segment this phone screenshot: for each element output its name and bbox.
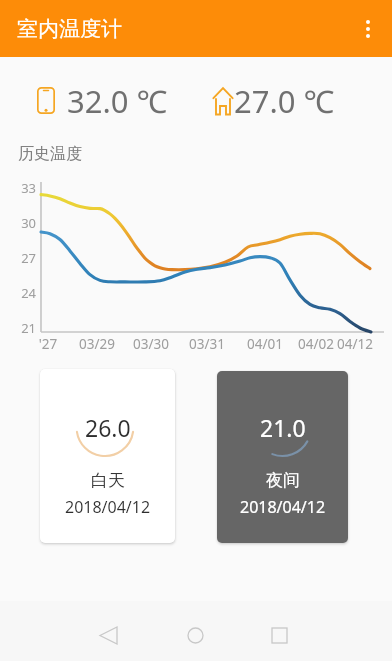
staticText: 04/02 (291, 335, 341, 353)
staticText: 21.0 (260, 412, 306, 443)
staticText: 白天 (91, 470, 125, 491)
staticText: 03/31 (182, 335, 232, 353)
staticText: 04/01 (240, 335, 290, 353)
staticText: 27.0 ℃ (234, 80, 335, 122)
button[interactable]: Back (84, 611, 132, 659)
staticText: 21 (12, 319, 36, 337)
staticText: 26.0 (85, 412, 131, 443)
staticText: 室内温度计 (17, 16, 344, 42)
staticText: 32.0 ℃ (67, 80, 168, 122)
staticText: 03/30 (126, 335, 176, 353)
button[interactable]: Home (171, 611, 219, 659)
staticText: 2018/04/12 (65, 496, 151, 518)
staticText: 2018/04/12 (240, 496, 326, 518)
staticText: '27 (23, 335, 73, 353)
button[interactable]: 21.0 (217, 371, 348, 543)
staticText: 03/29 (72, 335, 122, 353)
staticText: 夜间 (266, 470, 300, 491)
button[interactable]: Recents (255, 611, 303, 659)
button[interactable]: 26.0 (40, 369, 175, 543)
staticText: 24 (12, 284, 36, 302)
staticText: 04/12 (330, 335, 380, 353)
staticText: 30 (12, 214, 36, 232)
staticText: 33 (12, 179, 36, 197)
staticText: 历史温度 (18, 144, 82, 164)
staticText: 27 (12, 249, 36, 267)
button[interactable]: More options (344, 0, 392, 57)
